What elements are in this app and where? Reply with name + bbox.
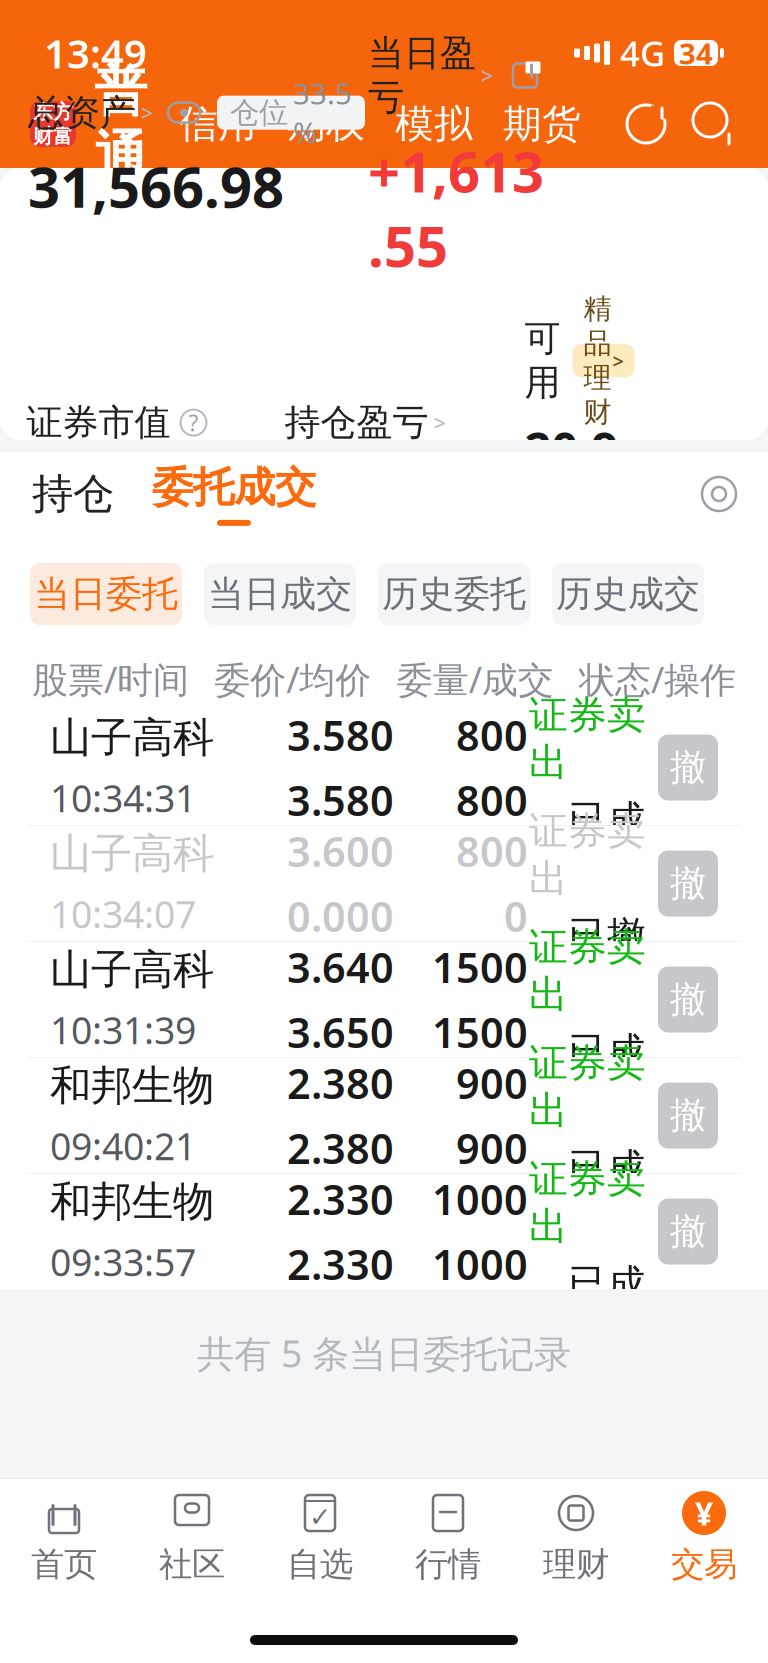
staticText: 和邦生物 xyxy=(50,1060,214,1111)
staticText: 行情 xyxy=(415,1544,481,1585)
staticText: 800 xyxy=(456,824,528,878)
staticText: 证券卖出 xyxy=(529,1039,646,1134)
button[interactable]: 首页 xyxy=(0,1479,128,1597)
button[interactable]: 持仓 xyxy=(28,469,118,519)
staticText: 2.380 xyxy=(287,1120,394,1175)
staticText: 已成 xyxy=(568,1144,646,1192)
staticText: 3.600 xyxy=(287,824,394,878)
staticText: 自选 xyxy=(287,1544,353,1585)
button[interactable]: 精品理财 xyxy=(560,344,634,377)
staticText: 2.330 xyxy=(287,1172,394,1226)
staticText: 900 xyxy=(456,1120,528,1175)
button[interactable]: 社区 xyxy=(128,1479,256,1597)
staticText: 09:40:21 xyxy=(50,1121,196,1171)
button[interactable]: 历史成交 xyxy=(552,563,704,625)
staticText: 山子高科 xyxy=(50,944,214,995)
button[interactable]: 持仓盈亏 xyxy=(284,400,524,445)
staticText: 信用 xyxy=(179,100,257,148)
button[interactable]: 期货 xyxy=(473,100,581,148)
staticText: 共有 5 条当日委托记录 xyxy=(197,1328,571,1378)
staticText: 4G xyxy=(620,30,665,76)
staticText: ¥ xyxy=(695,1492,713,1534)
staticText: 理财 xyxy=(543,1544,609,1585)
staticText: 和邦生物 xyxy=(50,1176,214,1227)
staticText: 34 xyxy=(679,33,713,72)
button[interactable]: ¥ xyxy=(640,1479,768,1597)
staticText: ? xyxy=(188,407,198,438)
button[interactable]: 信用 xyxy=(147,100,257,148)
staticText: 当日成交 xyxy=(208,572,352,616)
staticText: 撤 xyxy=(670,745,706,790)
button[interactable]: 和邦生物 xyxy=(0,1058,768,1173)
staticText: 当日盈亏 xyxy=(368,31,476,120)
button[interactable]: 当日成交 xyxy=(204,563,356,625)
staticText: 总资产 xyxy=(28,90,136,135)
staticText: 1500 xyxy=(432,1004,528,1059)
staticText: 历史委托 xyxy=(382,572,526,616)
staticText: 期货 xyxy=(503,100,581,148)
button[interactable]: 行情 xyxy=(384,1479,512,1597)
button[interactable]: 设置 xyxy=(698,473,740,515)
staticText: 20,987.88 xyxy=(524,417,618,603)
button[interactable]: 普通 xyxy=(76,58,147,189)
staticText: 1500 xyxy=(432,940,528,994)
staticText: > xyxy=(141,98,153,127)
staticText: 3.580 xyxy=(287,772,394,827)
button[interactable]: ✓ xyxy=(256,1479,384,1597)
button[interactable]: 撤 xyxy=(658,850,718,916)
staticText: 13:49 xyxy=(44,26,147,79)
staticText: 2.380 xyxy=(287,1056,394,1110)
staticText: 期权 xyxy=(287,100,365,148)
staticText: 股票/时间 xyxy=(32,655,189,703)
staticText: 2.330 xyxy=(287,1236,394,1291)
staticText: 仓位 xyxy=(230,95,288,131)
staticText: 0 xyxy=(504,888,528,943)
staticText: 证券卖出 xyxy=(529,807,646,902)
button[interactable]: 委托成交 xyxy=(118,462,320,526)
button[interactable]: 搜索 xyxy=(668,100,738,148)
button[interactable]: 撤 xyxy=(658,966,718,1032)
staticText: 10:34:07 xyxy=(50,889,196,939)
button[interactable]: 历史委托 xyxy=(378,563,530,625)
staticText: 交易 xyxy=(671,1544,737,1585)
button[interactable]: 山子高科 xyxy=(0,942,768,1057)
staticText: 1000 xyxy=(432,1236,528,1291)
staticText: 可用 xyxy=(524,316,560,405)
staticText: 证券市值 xyxy=(26,400,170,445)
staticText: 已撤 xyxy=(568,912,646,960)
button[interactable]: 山子高科 xyxy=(0,826,768,941)
staticText: 委托成交 xyxy=(152,462,316,513)
button[interactable]: 总资产 xyxy=(28,90,153,135)
staticText: 3.580 xyxy=(287,708,394,762)
button[interactable]: 撤 xyxy=(658,1082,718,1148)
staticText: 撤 xyxy=(670,1093,706,1138)
staticText: 委价/均价 xyxy=(214,655,371,703)
staticText: +1,613.55 xyxy=(368,134,544,282)
button[interactable]: 当日委托 xyxy=(30,563,182,625)
staticText: 已成 xyxy=(568,1028,646,1076)
button[interactable]: 模拟 xyxy=(365,100,473,148)
staticText: +134.41 xyxy=(284,457,459,519)
button[interactable]: 撤 xyxy=(658,734,718,800)
button[interactable]: 撤 xyxy=(658,1198,718,1264)
button[interactable]: 期权 xyxy=(257,100,365,148)
staticText: 900 xyxy=(456,1056,528,1110)
button[interactable]: 当日盈亏 xyxy=(368,31,493,120)
staticText: 31,566.98 xyxy=(28,149,284,223)
button[interactable]: 理财 xyxy=(512,1479,640,1597)
staticText: 首页 xyxy=(31,1544,97,1585)
button[interactable]: 和邦生物 xyxy=(0,1174,768,1289)
staticText: 撤 xyxy=(670,1209,706,1254)
staticText: 0.000 xyxy=(287,888,394,943)
staticText: 持仓 xyxy=(32,469,114,519)
button[interactable]: 山子高科 xyxy=(0,710,768,825)
button[interactable]: 隐藏金额 xyxy=(153,100,201,126)
button[interactable]: 分享 xyxy=(493,59,541,91)
staticText: 财富 xyxy=(33,124,73,149)
staticText: 精品理财 xyxy=(583,292,611,429)
button[interactable]: 刷新 xyxy=(624,102,668,146)
staticText: 持仓盈亏 xyxy=(284,400,428,445)
staticText: > xyxy=(433,408,445,437)
staticText: 3.640 xyxy=(287,940,394,994)
staticText: 已成 xyxy=(568,796,646,844)
